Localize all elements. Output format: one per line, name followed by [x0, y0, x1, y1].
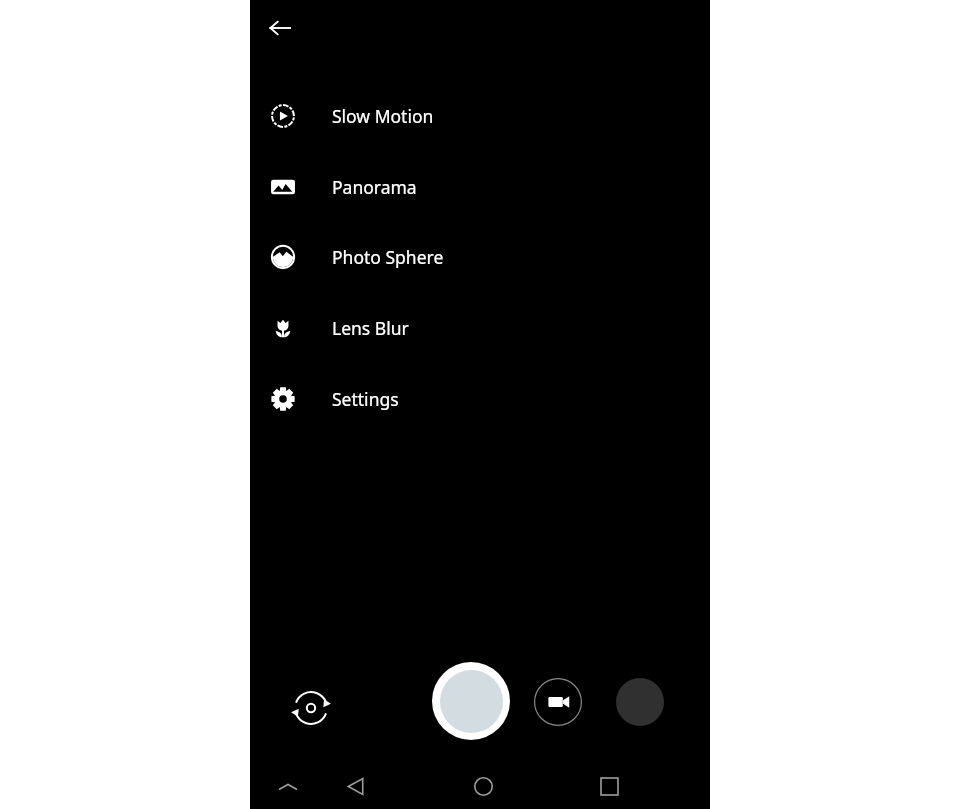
- staticText: Slow Motion: [332, 104, 434, 128]
- button[interactable]: Slow Motion: [250, 81, 710, 151]
- staticText: Lens Blur: [332, 316, 409, 340]
- button[interactable]: Gallery: [616, 678, 664, 726]
- button[interactable]: Recent apps: [582, 764, 636, 809]
- button[interactable]: Hide navigation: [258, 764, 318, 809]
- staticText: Panorama: [332, 175, 417, 199]
- staticText: Settings: [332, 387, 399, 411]
- button[interactable]: Back: [328, 764, 382, 809]
- button[interactable]: Photo Sphere: [250, 222, 710, 292]
- button[interactable]: Home: [456, 764, 510, 809]
- button[interactable]: Back: [256, 4, 304, 52]
- button[interactable]: Video: [534, 678, 582, 726]
- button[interactable]: Switch camera: [286, 683, 336, 733]
- button[interactable]: Settings: [250, 364, 710, 434]
- button[interactable]: Lens Blur: [250, 293, 710, 363]
- button[interactable]: Panorama: [250, 152, 710, 222]
- staticText: Photo Sphere: [332, 245, 444, 269]
- button[interactable]: Shutter: [432, 662, 510, 740]
